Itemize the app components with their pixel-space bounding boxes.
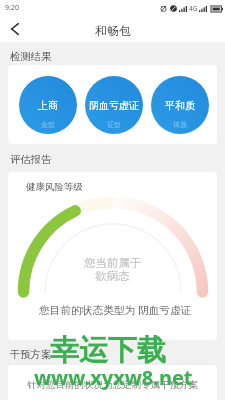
- staticText: 证型: [107, 120, 121, 129]
- staticText: 体质: [173, 120, 187, 129]
- button[interactable]: 平和质: [151, 76, 209, 134]
- staticText: 幸运下载: [50, 332, 166, 369]
- button[interactable]: 返回: [2, 16, 28, 42]
- button[interactable]: 上商: [19, 76, 77, 134]
- staticText: 4G: [189, 4, 198, 13]
- staticText: 您目前的状态类型为 阴血亏虚证: [39, 303, 192, 318]
- staticText: 针对您目前的状况为您定制专属干预方案: [27, 379, 198, 391]
- staticText: 和畅包: [95, 23, 131, 38]
- button[interactable]: 阴血亏虚证: [85, 76, 143, 134]
- staticText: 检测结果: [10, 50, 52, 63]
- staticText: 上商: [38, 99, 58, 112]
- staticText: 欲病态: [95, 269, 130, 283]
- staticText: 阴血亏虚证: [89, 99, 139, 112]
- staticText: 平和质: [165, 99, 195, 112]
- staticText: 干预方案: [10, 348, 52, 361]
- staticText: 金型: [41, 120, 55, 129]
- staticText: 您当前属于: [84, 256, 142, 270]
- staticText: 9:20: [5, 3, 19, 13]
- staticText: 健康风险等级: [26, 181, 83, 193]
- staticText: www.xyxw8.net: [34, 364, 193, 391]
- staticText: 评估报告: [10, 153, 52, 166]
